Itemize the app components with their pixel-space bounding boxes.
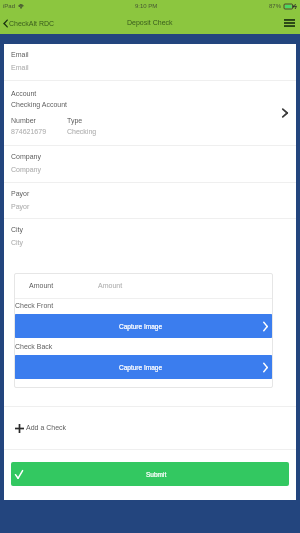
staticText: Email: [11, 51, 29, 59]
staticText: Capture Image: [119, 323, 162, 330]
staticText: Checking Account: [11, 101, 68, 109]
button[interactable]: Add a Check: [4, 407, 296, 449]
button[interactable]: Amount: [14, 273, 273, 298]
button[interactable]: Account: [4, 81, 296, 145]
staticText: 87%: [269, 3, 282, 10]
staticText: Number: [11, 117, 36, 125]
button[interactable]: Capture Image: [14, 314, 273, 338]
staticText: Checking: [67, 128, 97, 136]
staticText: Amount: [98, 282, 123, 290]
staticText: Account: [11, 90, 37, 98]
staticText: Email: [11, 64, 29, 72]
staticText: CheckAlt RDC: [9, 20, 55, 28]
button[interactable]: Menu: [279, 15, 300, 31]
staticText: City: [11, 239, 24, 247]
button[interactable]: CheckAlt RDC: [0, 15, 58, 32]
staticText: 874621679: [11, 128, 47, 136]
staticText: Type: [67, 117, 83, 125]
button[interactable]: Capture Image: [14, 355, 273, 379]
staticText: Check Back: [15, 343, 53, 351]
staticText: Capture Image: [119, 364, 162, 371]
staticText: Payor: [11, 190, 30, 198]
button[interactable]: City: [4, 219, 296, 273]
staticText: 9:10 PM: [135, 3, 158, 10]
staticText: Payor: [11, 203, 30, 211]
staticText: Check Front: [15, 302, 54, 310]
staticText: iPad: [3, 3, 16, 10]
button[interactable]: Payor: [4, 183, 296, 218]
staticText: Amount: [29, 282, 54, 290]
staticText: Company: [11, 166, 41, 174]
button[interactable]: Submit: [11, 462, 289, 486]
staticText: Add a Check: [26, 424, 67, 432]
button[interactable]: Email: [4, 44, 296, 80]
staticText: Deposit Check: [127, 19, 173, 27]
staticText: Company: [11, 153, 41, 161]
staticText: City: [11, 226, 24, 234]
button[interactable]: Company: [4, 146, 296, 182]
staticText: Submit: [146, 471, 167, 478]
